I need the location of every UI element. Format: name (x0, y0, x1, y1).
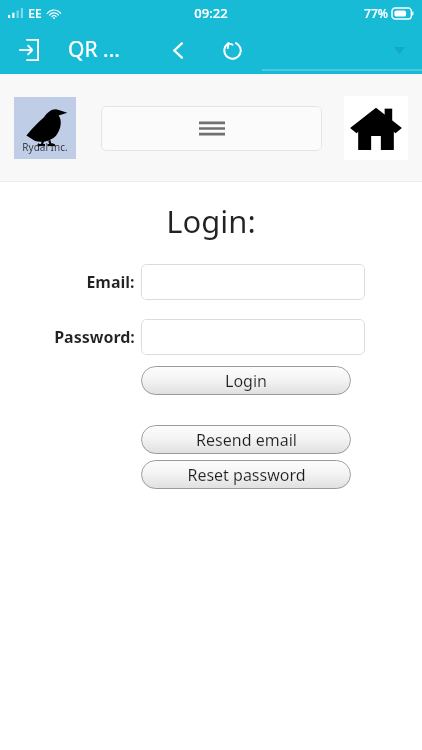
staticText: EE (28, 5, 42, 21)
button[interactable]: Menu (101, 106, 322, 151)
staticText: Rydal Inc. (22, 140, 68, 154)
button[interactable]: Back (156, 28, 200, 72)
button[interactable]: Resend email (141, 425, 351, 454)
button[interactable]: More options (382, 33, 416, 67)
staticText: 77% (364, 5, 388, 21)
button[interactable]: Email: (141, 264, 365, 300)
staticText: Login: (166, 200, 256, 242)
staticText: Login (225, 370, 267, 392)
staticText: Reset password (187, 464, 306, 486)
button[interactable]: QR ... (66, 29, 122, 70)
staticText: 09:22 (194, 4, 228, 22)
button[interactable]: Reset password (141, 460, 351, 489)
button[interactable]: Login (141, 366, 351, 395)
button[interactable]: Rydal Inc. logo (14, 97, 76, 159)
staticText: Email: (86, 271, 135, 293)
staticText: Password: (54, 326, 135, 348)
button[interactable]: Log in (6, 28, 50, 72)
button[interactable]: Password: (141, 319, 365, 355)
staticText: QR ... (68, 35, 120, 64)
button[interactable]: Home (344, 96, 408, 160)
staticText: Resend email (196, 429, 297, 451)
button[interactable]: Reload (210, 28, 254, 72)
